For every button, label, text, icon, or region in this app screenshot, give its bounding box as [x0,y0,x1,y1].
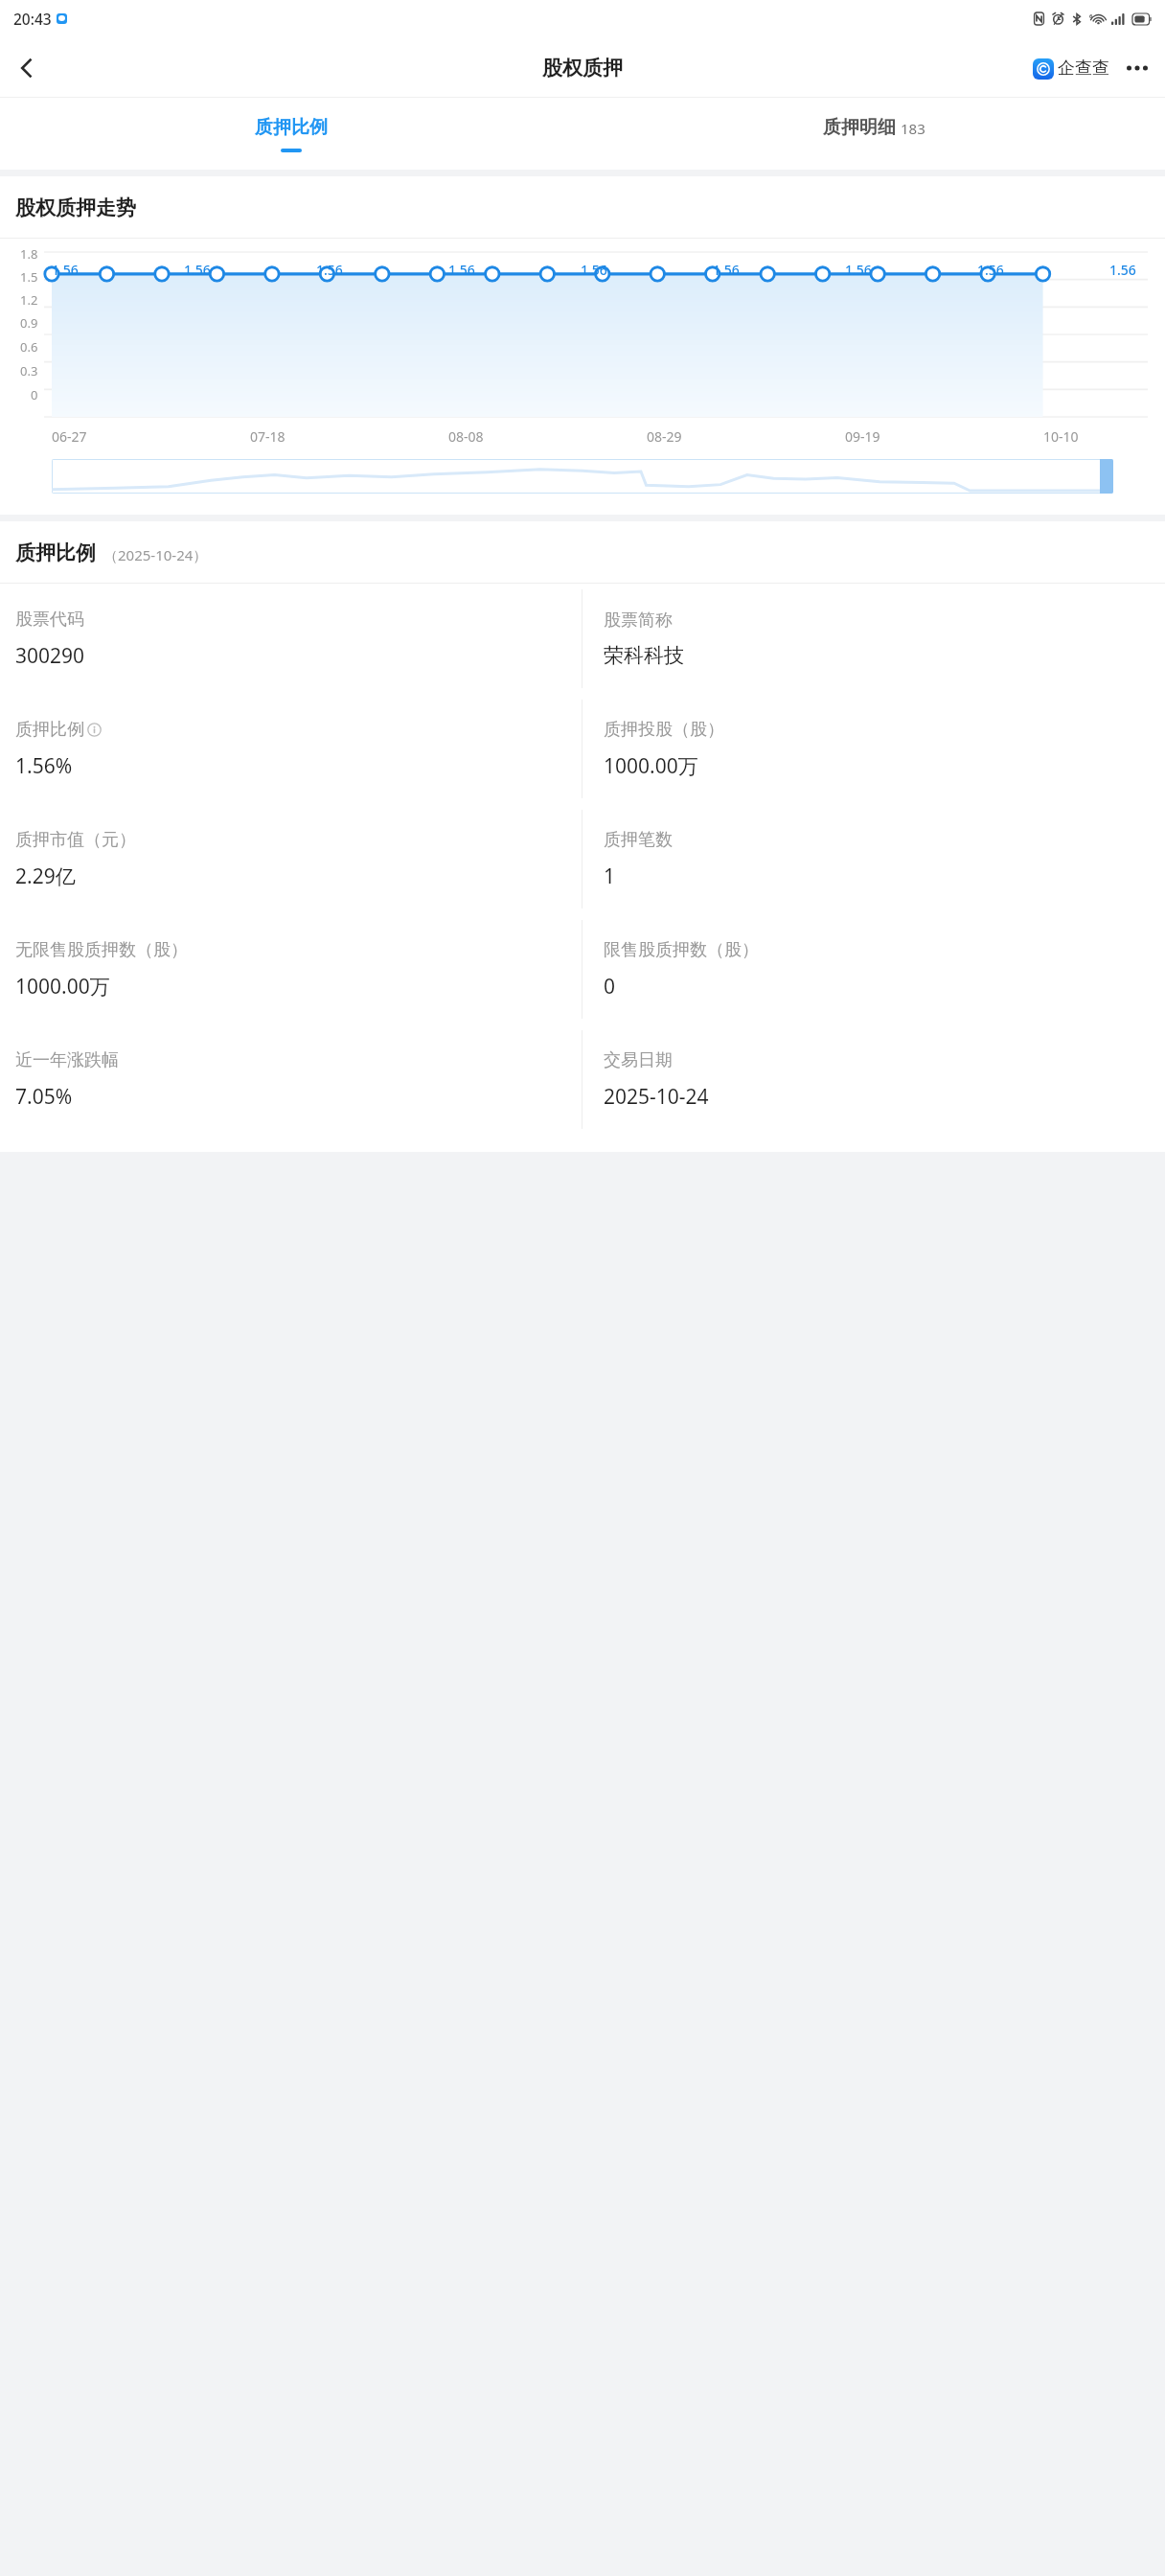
staticText: 质押笔数 [604,829,673,851]
staticText: 1.56 [581,261,607,279]
staticText: 08-29 [647,427,682,446]
staticText: 0 [604,973,616,1000]
button[interactable]: Chart range slider [52,459,1113,494]
staticText: 08-08 [448,427,484,446]
button[interactable]: More options [1123,54,1152,82]
staticText: 无限售股质押数（股） [15,939,188,961]
staticText: 07-18 [250,427,286,446]
staticText: 股权质押 [542,56,623,80]
staticText: 1.56 [184,261,211,279]
staticText: 1.56 [977,261,1004,279]
staticText: 1.56 [713,261,740,279]
staticText: 质押比例 [15,540,96,565]
staticText: 1.2 [20,291,38,309]
staticText: 2025-10-24 [604,1083,709,1111]
staticText: 1.56% [15,752,73,780]
staticText: 1.56 [448,261,475,279]
staticText: 质押比例 [15,719,84,741]
staticText: 09-19 [845,427,880,446]
staticText: 1000.00万 [604,752,698,780]
staticText: 质押明细 [823,116,896,139]
staticText: 近一年涨跌幅 [15,1049,119,1071]
staticText: 2.29亿 [15,862,76,890]
staticText: 06-27 [52,427,87,446]
staticText: 股票代码 [15,609,84,631]
staticText: 限售股质押数（股） [604,939,759,961]
staticText: 1.56 [52,261,79,279]
staticText: 质押市值（元） [15,829,136,851]
button[interactable]: Back [0,41,54,95]
staticText: 交易日期 [604,1049,673,1071]
staticText: 1.56 [316,261,343,279]
staticText: 企查查 [1058,57,1109,80]
staticText: 300290 [15,642,85,670]
staticText: 股票简称 [604,609,673,632]
staticText: 1.56 [845,261,872,279]
staticText: 1.56 [1109,261,1136,279]
staticText: 10-10 [1043,427,1079,446]
staticText: 荣科科技 [604,643,684,668]
staticText: 股权质押走势 [15,195,136,220]
staticText: 质押投股（股） [604,719,724,741]
staticText: 0.3 [20,362,38,379]
staticText: （2025-10-24） [103,545,208,564]
staticText: 6 [1089,12,1093,20]
staticText: 质押比例 [255,116,328,139]
button[interactable]: 质押比例 [0,98,582,170]
staticText: 1.5 [20,268,38,286]
staticText: 183 [901,119,925,138]
button[interactable]: 质押明细 [582,98,1165,170]
staticText: 0 [31,386,38,403]
button[interactable]: 企查查 [1033,57,1109,80]
staticText: 1.8 [20,245,38,263]
staticText: 1 [604,862,616,890]
staticText: 20:43 [13,9,52,29]
staticText: 1000.00万 [15,973,110,1000]
staticText: 7.05% [15,1083,73,1111]
staticText: 0.6 [20,338,38,356]
staticText: 0.9 [20,314,38,332]
